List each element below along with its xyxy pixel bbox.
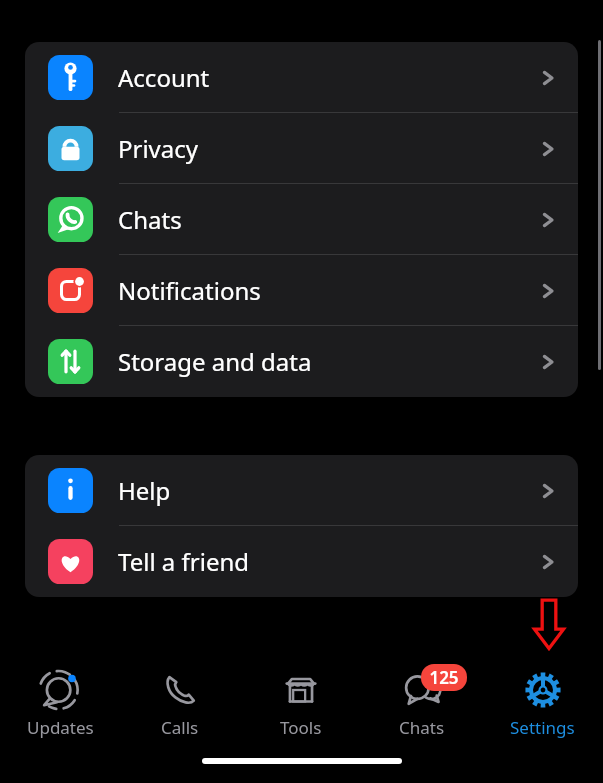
button[interactable]: Storage and data xyxy=(25,326,578,397)
button[interactable]: Notifications xyxy=(25,255,578,326)
button[interactable]: Tools xyxy=(240,655,361,739)
staticText: Privacy xyxy=(118,132,199,165)
staticText: Account xyxy=(118,61,210,94)
staticText: Tools xyxy=(280,716,322,739)
button[interactable]: Account xyxy=(25,42,578,113)
staticText: Chats xyxy=(399,716,445,739)
staticText: Notifications xyxy=(118,274,261,307)
staticText: Tell a friend xyxy=(118,545,250,578)
staticText: Chats xyxy=(118,203,182,236)
staticText: Calls xyxy=(161,716,199,739)
button[interactable]: Chats xyxy=(361,655,482,739)
staticText: Updates xyxy=(27,716,94,739)
button[interactable]: Tell a friend xyxy=(25,526,578,597)
staticText: Storage and data xyxy=(118,345,312,378)
button[interactable]: Chats xyxy=(25,184,578,255)
button[interactable]: Help xyxy=(25,455,578,526)
button[interactable]: Updates xyxy=(0,655,120,739)
button[interactable]: Calls xyxy=(120,655,240,739)
button[interactable]: Settings xyxy=(482,655,603,739)
staticText: 125 xyxy=(429,666,459,689)
staticText: Settings xyxy=(510,716,575,739)
staticText: Help xyxy=(118,474,171,507)
button[interactable]: Privacy xyxy=(25,113,578,184)
